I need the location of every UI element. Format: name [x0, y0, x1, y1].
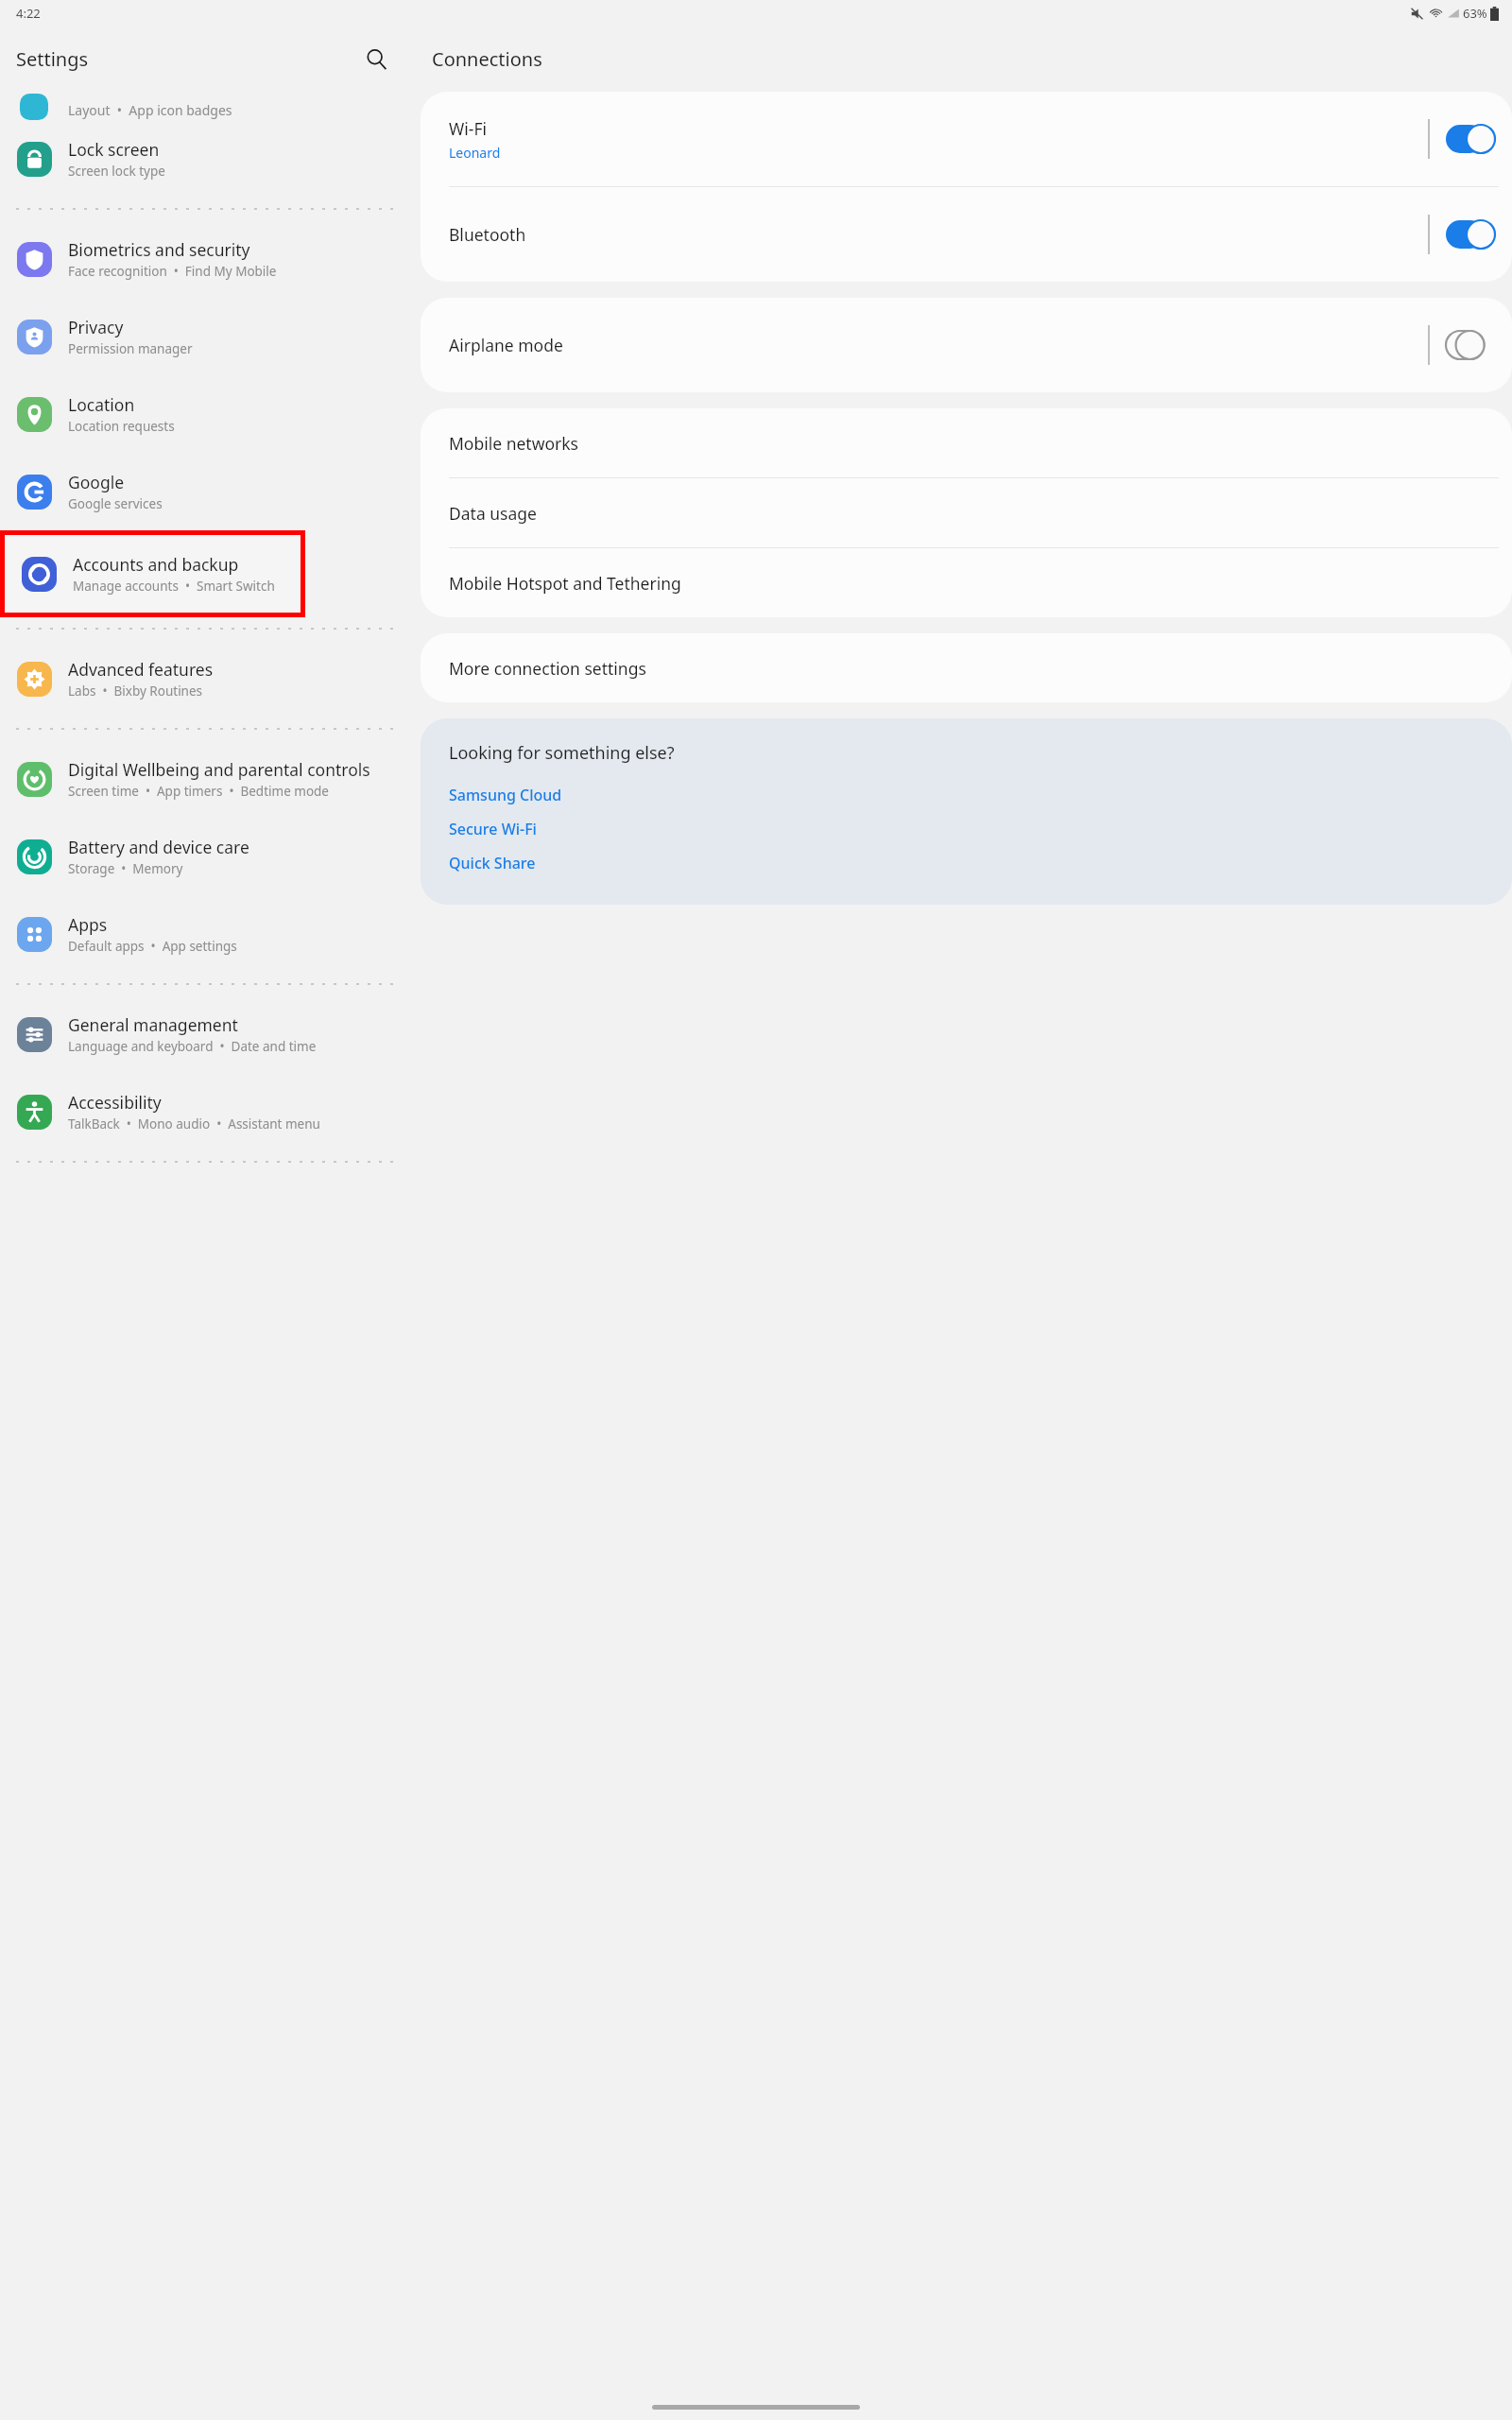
button[interactable]: Digital Wellbeing and parental controls — [0, 740, 416, 818]
button[interactable]: Quick Share — [449, 846, 536, 880]
staticText: Battery and device care — [68, 836, 249, 858]
staticText: Accounts and backup — [73, 553, 239, 576]
button[interactable]: Airplane mode toggle — [1446, 331, 1495, 359]
staticText: Permission manager — [68, 340, 193, 357]
staticText: Advanced features — [68, 658, 214, 681]
button[interactable]: Bluetooth — [421, 187, 1512, 282]
staticText: Apps — [68, 913, 108, 936]
staticText: Wi-Fi — [449, 117, 488, 140]
staticText: Storage • Memory — [68, 860, 183, 877]
staticText: Google services — [68, 495, 163, 512]
staticText: Default apps • App settings — [68, 938, 237, 955]
button[interactable]: General management — [0, 995, 416, 1073]
staticText: 4:22 — [16, 5, 41, 22]
button[interactable]: Accounts and backup — [5, 535, 301, 613]
button[interactable]: Secure Wi-Fi — [449, 812, 537, 846]
button[interactable]: Privacy — [0, 298, 416, 375]
staticText: Screen lock type — [68, 163, 165, 180]
staticText: Manage accounts • Smart Switch — [73, 578, 275, 595]
button[interactable]: Advanced features — [0, 640, 416, 717]
button[interactable]: Mobile networks — [421, 408, 1512, 477]
button[interactable]: More connection settings — [421, 633, 1512, 702]
staticText: Airplane mode — [449, 334, 563, 356]
button[interactable]: Lock screen — [0, 120, 416, 198]
button[interactable]: Accessibility — [0, 1073, 416, 1150]
button[interactable]: Data usage — [421, 478, 1512, 547]
staticText: General management — [68, 1013, 238, 1036]
button[interactable]: Search — [357, 40, 395, 78]
button[interactable]: Wi-Fi toggle — [1446, 125, 1495, 153]
staticText: Labs • Bixby Routines — [68, 683, 203, 700]
button[interactable]: Biometrics and security — [0, 220, 416, 298]
button[interactable]: Location — [0, 375, 416, 453]
staticText: Looking for something else? — [449, 741, 675, 765]
staticText: Data usage — [449, 502, 537, 525]
staticText: Screen time • App timers • Bedtime mode — [68, 783, 329, 800]
staticText: Accessibility — [68, 1091, 162, 1114]
staticText: TalkBack • Mono audio • Assistant menu — [68, 1115, 320, 1132]
button[interactable]: Battery and device care — [0, 818, 416, 895]
button[interactable]: Layout • App icon badges — [0, 92, 416, 120]
staticText: Google — [68, 471, 125, 493]
staticText: Mobile networks — [449, 432, 578, 455]
staticText: Face recognition • Find My Mobile — [68, 263, 277, 280]
staticText: Layout • App icon badges — [68, 101, 232, 119]
staticText: Lock screen — [68, 138, 160, 161]
staticText: Mobile Hotspot and Tethering — [449, 572, 681, 595]
staticText: Connections — [432, 46, 542, 72]
button[interactable]: Wi-Fi — [421, 92, 1512, 186]
staticText: Samsung Cloud — [449, 785, 562, 805]
staticText: Language and keyboard • Date and time — [68, 1038, 317, 1055]
staticText: More connection settings — [449, 657, 646, 680]
button[interactable]: Apps — [0, 895, 416, 973]
staticText: Settings — [16, 46, 89, 72]
staticText: 63% — [1463, 5, 1487, 22]
button[interactable]: Mobile Hotspot and Tethering — [421, 548, 1512, 617]
staticText: Digital Wellbeing and parental controls — [68, 758, 370, 781]
button[interactable]: Google — [0, 453, 416, 530]
staticText: Privacy — [68, 316, 124, 338]
staticText: Location requests — [68, 418, 175, 435]
button[interactable]: Samsung Cloud — [449, 778, 562, 812]
button[interactable]: Airplane mode — [421, 298, 1512, 392]
staticText: Biometrics and security — [68, 238, 250, 261]
staticText: Quick Share — [449, 853, 536, 873]
staticText: Bluetooth — [449, 223, 526, 246]
staticText: Leonard — [449, 144, 501, 162]
button[interactable]: Bluetooth toggle — [1446, 220, 1495, 249]
staticText: Location — [68, 393, 135, 416]
staticText: Secure Wi-Fi — [449, 819, 537, 839]
